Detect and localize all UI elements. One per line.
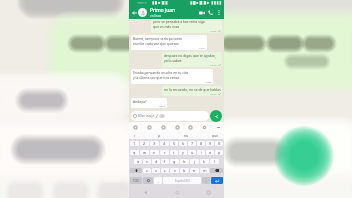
button[interactable]: k (200, 159, 209, 164)
button[interactable]: a (134, 159, 142, 164)
button[interactable]: 8 (197, 141, 205, 146)
staticText: y la última vez que nos vimos (133, 75, 180, 80)
button[interactable]: Mensaje (131, 111, 209, 121)
staticText: ya lo sabes (164, 58, 182, 63)
staticText: e (153, 150, 156, 155)
button[interactable]: i (197, 150, 205, 155)
button[interactable]: Back (141, 188, 149, 196)
button[interactable]: b (180, 168, 189, 173)
staticText: z (146, 168, 148, 173)
staticText: 20:44 (210, 92, 217, 95)
button[interactable]: 2 (140, 141, 149, 146)
staticText: no (184, 133, 189, 138)
button[interactable]: . (202, 177, 210, 184)
button[interactable]: no lo recuerdo, no se de que hablas (162, 86, 222, 96)
button[interactable]: t (170, 150, 178, 155)
button[interactable]: Video call (197, 8, 206, 17)
button[interactable]: Andaya? (131, 98, 167, 108)
button[interactable]: 4 (160, 141, 169, 146)
button[interactable]: Enter (211, 177, 223, 184)
staticText: ?123 (133, 179, 139, 183)
button[interactable]: v (170, 168, 179, 173)
staticText: s (146, 159, 148, 164)
button[interactable]: Estaba pensando mucho en tu cita (131, 69, 213, 84)
button[interactable]: m (200, 168, 209, 173)
staticText: 9 (209, 141, 212, 146)
button[interactable]: j (190, 159, 199, 164)
staticText: i (201, 150, 202, 155)
button[interactable]: o (206, 150, 214, 155)
staticText: 3 (153, 141, 156, 146)
button[interactable]: no (182, 133, 191, 138)
button[interactable]: q (130, 150, 139, 155)
button[interactable]: 1 (130, 141, 139, 146)
staticText: 4 (163, 141, 166, 146)
button[interactable]: Emoji (143, 177, 153, 184)
button[interactable]: i (132, 133, 137, 138)
button[interactable]: p (156, 133, 163, 138)
staticText: i (134, 133, 135, 138)
button[interactable]: Recents (204, 188, 212, 196)
button[interactable]: Back (130, 9, 138, 17)
button[interactable]: n (190, 168, 199, 173)
button[interactable]: Settings (201, 124, 207, 130)
staticText: l (214, 159, 215, 164)
button[interactable]: que (210, 133, 221, 138)
staticText: Mensaje (138, 113, 155, 119)
button[interactable]: u (188, 150, 196, 155)
button[interactable]: z (143, 168, 151, 173)
staticText: que (212, 133, 219, 138)
button[interactable]: 0 (215, 141, 223, 146)
button[interactable]: Shift (130, 168, 142, 173)
staticText: 19:51 (199, 46, 206, 49)
staticText: n (193, 168, 196, 173)
button[interactable]: e (150, 150, 159, 155)
staticText: Andaya? (133, 99, 147, 104)
button[interactable]: Backspace (210, 168, 223, 173)
button[interactable]: More options (215, 9, 222, 16)
button[interactable]: Send (210, 110, 222, 122)
button[interactable]: s (143, 159, 151, 164)
button[interactable]: c (161, 168, 169, 173)
button[interactable]: 7 (188, 141, 196, 146)
button[interactable]: g (170, 159, 179, 164)
button[interactable]: Theme (187, 124, 193, 130)
staticText: p (218, 150, 221, 155)
button[interactable]: 3 (150, 141, 159, 146)
staticText: m (203, 168, 207, 173)
button[interactable]: l (210, 159, 219, 164)
button[interactable]: pero se pensaba a kaz reina sigo (151, 19, 222, 33)
button[interactable]: Space (163, 177, 201, 184)
button[interactable]: Home (173, 188, 181, 196)
button[interactable]: Stickers (146, 124, 152, 130)
button[interactable]: Profile photo (138, 8, 147, 17)
button[interactable]: Clipboard (132, 124, 138, 130)
staticText: 8 (200, 141, 203, 146)
staticText: 2 (143, 141, 146, 146)
button[interactable]: 9 (206, 141, 214, 146)
button[interactable]: h (180, 159, 189, 164)
button[interactable]: GIF (160, 124, 166, 130)
staticText: Estaba pensando mucho en tu cita (133, 70, 188, 75)
staticText: 19:56 (205, 80, 212, 83)
button[interactable]: Translate (174, 124, 180, 130)
staticText: pero se pensaba a kaz reina sigo (153, 19, 205, 24)
staticText: a (137, 159, 140, 164)
button[interactable]: x (152, 168, 160, 173)
button[interactable]: despues no digas que te agobio, (162, 52, 222, 67)
button[interactable]: r (160, 150, 169, 155)
button[interactable]: More (215, 124, 221, 130)
button[interactable]: f (161, 159, 169, 164)
button[interactable]: , (154, 177, 162, 184)
staticText: en línea (150, 14, 162, 18)
button[interactable]: w (140, 150, 149, 155)
button[interactable]: d (152, 159, 160, 164)
button[interactable]: p (215, 150, 223, 155)
staticText: despues no digas que te agobio, (164, 53, 216, 58)
button[interactable]: 5 (170, 141, 178, 146)
button[interactable]: Bueno, tampoco sería pa tanto (131, 35, 207, 50)
button[interactable]: y (179, 150, 187, 155)
button[interactable]: Voice call (206, 8, 215, 17)
button[interactable]: ?123 (130, 177, 142, 184)
button[interactable]: 6 (179, 141, 187, 146)
